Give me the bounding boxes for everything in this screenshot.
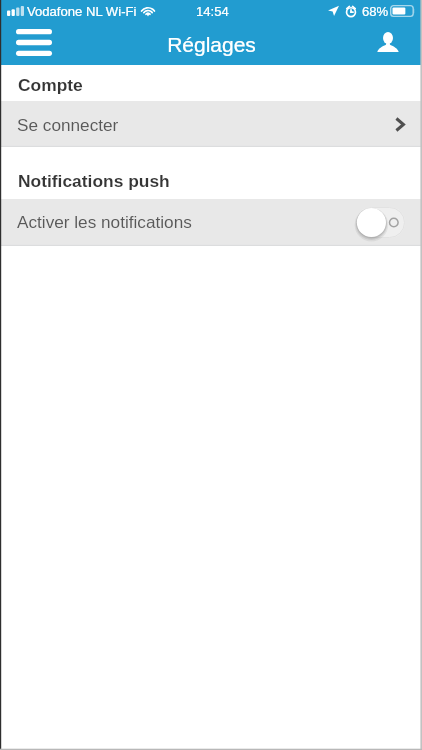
staticText: Activer les notifications [17, 212, 192, 231]
button[interactable]: Menu [4, 22, 66, 65]
staticText: Compte [18, 75, 83, 94]
button[interactable]: Se connecter [0, 101, 422, 147]
button[interactable]: Activer les notifications [0, 199, 422, 246]
staticText: Notifications push [18, 171, 170, 190]
staticText: Réglages [167, 33, 256, 56]
staticText: 14:54 [196, 4, 229, 19]
button[interactable]: Account [364, 22, 422, 65]
staticText: 68% [362, 4, 389, 19]
staticText: Se connecter [17, 115, 119, 134]
staticText: Vodafone NL Wi-Fi [27, 4, 137, 19]
